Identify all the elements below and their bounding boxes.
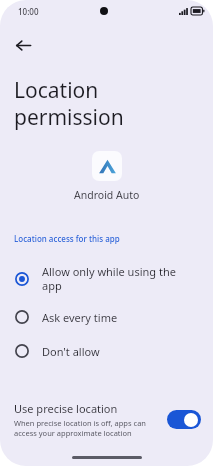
button[interactable]: Use precise location [0, 395, 213, 446]
staticText: Use precise location [14, 401, 118, 416]
button[interactable]: Don't allow [0, 334, 213, 368]
button[interactable]: Back [6, 28, 40, 62]
staticText: Don't allow [42, 344, 100, 359]
staticText: Android Auto [74, 188, 140, 202]
staticText: Location access for this app [14, 233, 120, 244]
button[interactable]: Allow only while using the app [0, 257, 213, 300]
button[interactable]: Use precise location toggle [167, 410, 201, 429]
staticText: 10:00 [18, 6, 39, 17]
staticText: When precise location is off, apps can a… [14, 418, 146, 438]
staticText: Ask every time [42, 310, 118, 325]
staticText: Location permission [14, 76, 124, 131]
staticText: Allow only while using the app [42, 264, 176, 293]
button[interactable]: Ask every time [0, 300, 213, 334]
